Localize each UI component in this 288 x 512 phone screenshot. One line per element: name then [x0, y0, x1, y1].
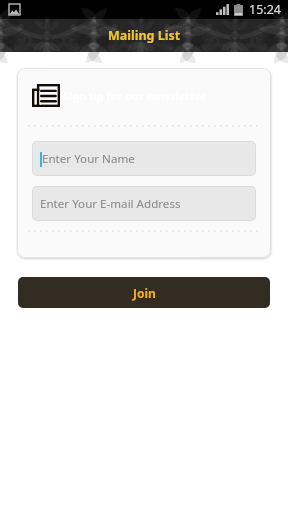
staticText: Enter Your Name: [42, 151, 135, 167]
staticText: Mailing List: [108, 27, 181, 44]
button[interactable]: Join: [18, 277, 270, 308]
staticText: Join: [133, 285, 156, 301]
button[interactable]: Enter Your Name: [32, 141, 256, 176]
staticText: 15:24: [249, 1, 281, 18]
button[interactable]: Enter Your E-mail Address: [32, 186, 256, 221]
staticText: Enter Your E-mail Address: [40, 196, 181, 212]
